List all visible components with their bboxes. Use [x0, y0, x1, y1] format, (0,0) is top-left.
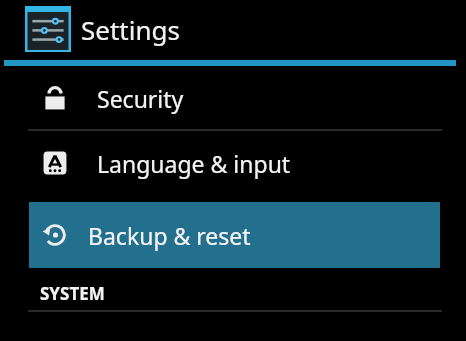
- staticText: Settings: [81, 12, 180, 47]
- other: Language and input: [42, 150, 68, 176]
- button[interactable]: Language and input: [0, 131, 466, 195]
- staticText: Backup & reset: [88, 220, 251, 251]
- staticText: SYSTEM: [40, 282, 105, 305]
- other: Security: [42, 85, 68, 111]
- button[interactable]: Backup and reset: [29, 202, 440, 268]
- staticText: Language & input: [97, 148, 291, 179]
- button[interactable]: Settings: [0, 0, 466, 58]
- staticText: Security: [97, 83, 184, 114]
- button[interactable]: Security: [0, 67, 466, 129]
- other: Backup and reset: [42, 222, 68, 248]
- other: Settings: [25, 6, 71, 52]
